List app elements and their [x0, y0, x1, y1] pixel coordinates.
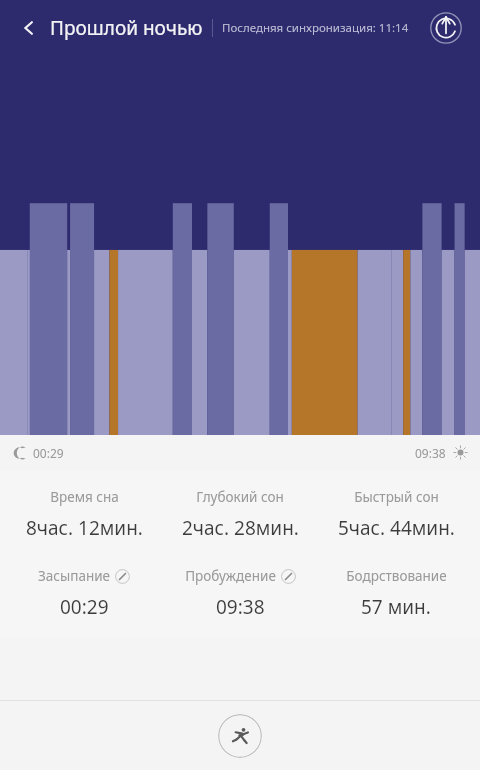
button[interactable]: Активность [218, 714, 262, 758]
button[interactable]: Глубокий сон [162, 488, 318, 541]
staticText: 8час. 12мин. [26, 515, 143, 541]
staticText: 00:29 [60, 594, 109, 620]
staticText: 57 мин. [361, 594, 431, 620]
button[interactable]: Бодрствование [318, 567, 474, 620]
staticText: 2час. 28мин. [182, 515, 299, 541]
staticText: Последняя синхронизация: 11:14 [222, 20, 409, 36]
button[interactable]: Быстрый сон [318, 488, 474, 541]
staticText: Время сна [50, 488, 119, 506]
button[interactable]: Засыпание [6, 567, 162, 620]
staticText: Глубокий сон [196, 488, 284, 506]
staticText: Бодрствование [346, 567, 447, 585]
staticText: 00:29 [33, 445, 64, 461]
button[interactable]: Время сна [6, 488, 162, 541]
staticText: 5час. 44мин. [338, 515, 455, 541]
staticText: Прошлой ночью [50, 15, 203, 41]
staticText: Засыпание [38, 567, 110, 585]
staticText: 09:38 [216, 594, 265, 620]
button[interactable]: Назад [14, 13, 44, 43]
staticText: Быстрый сон [354, 488, 439, 506]
button[interactable]: Пробуждение [162, 567, 318, 620]
staticText: Пробуждение [185, 567, 276, 585]
button[interactable]: Синхронизировать [426, 8, 466, 48]
staticText: 09:38 [415, 445, 446, 461]
